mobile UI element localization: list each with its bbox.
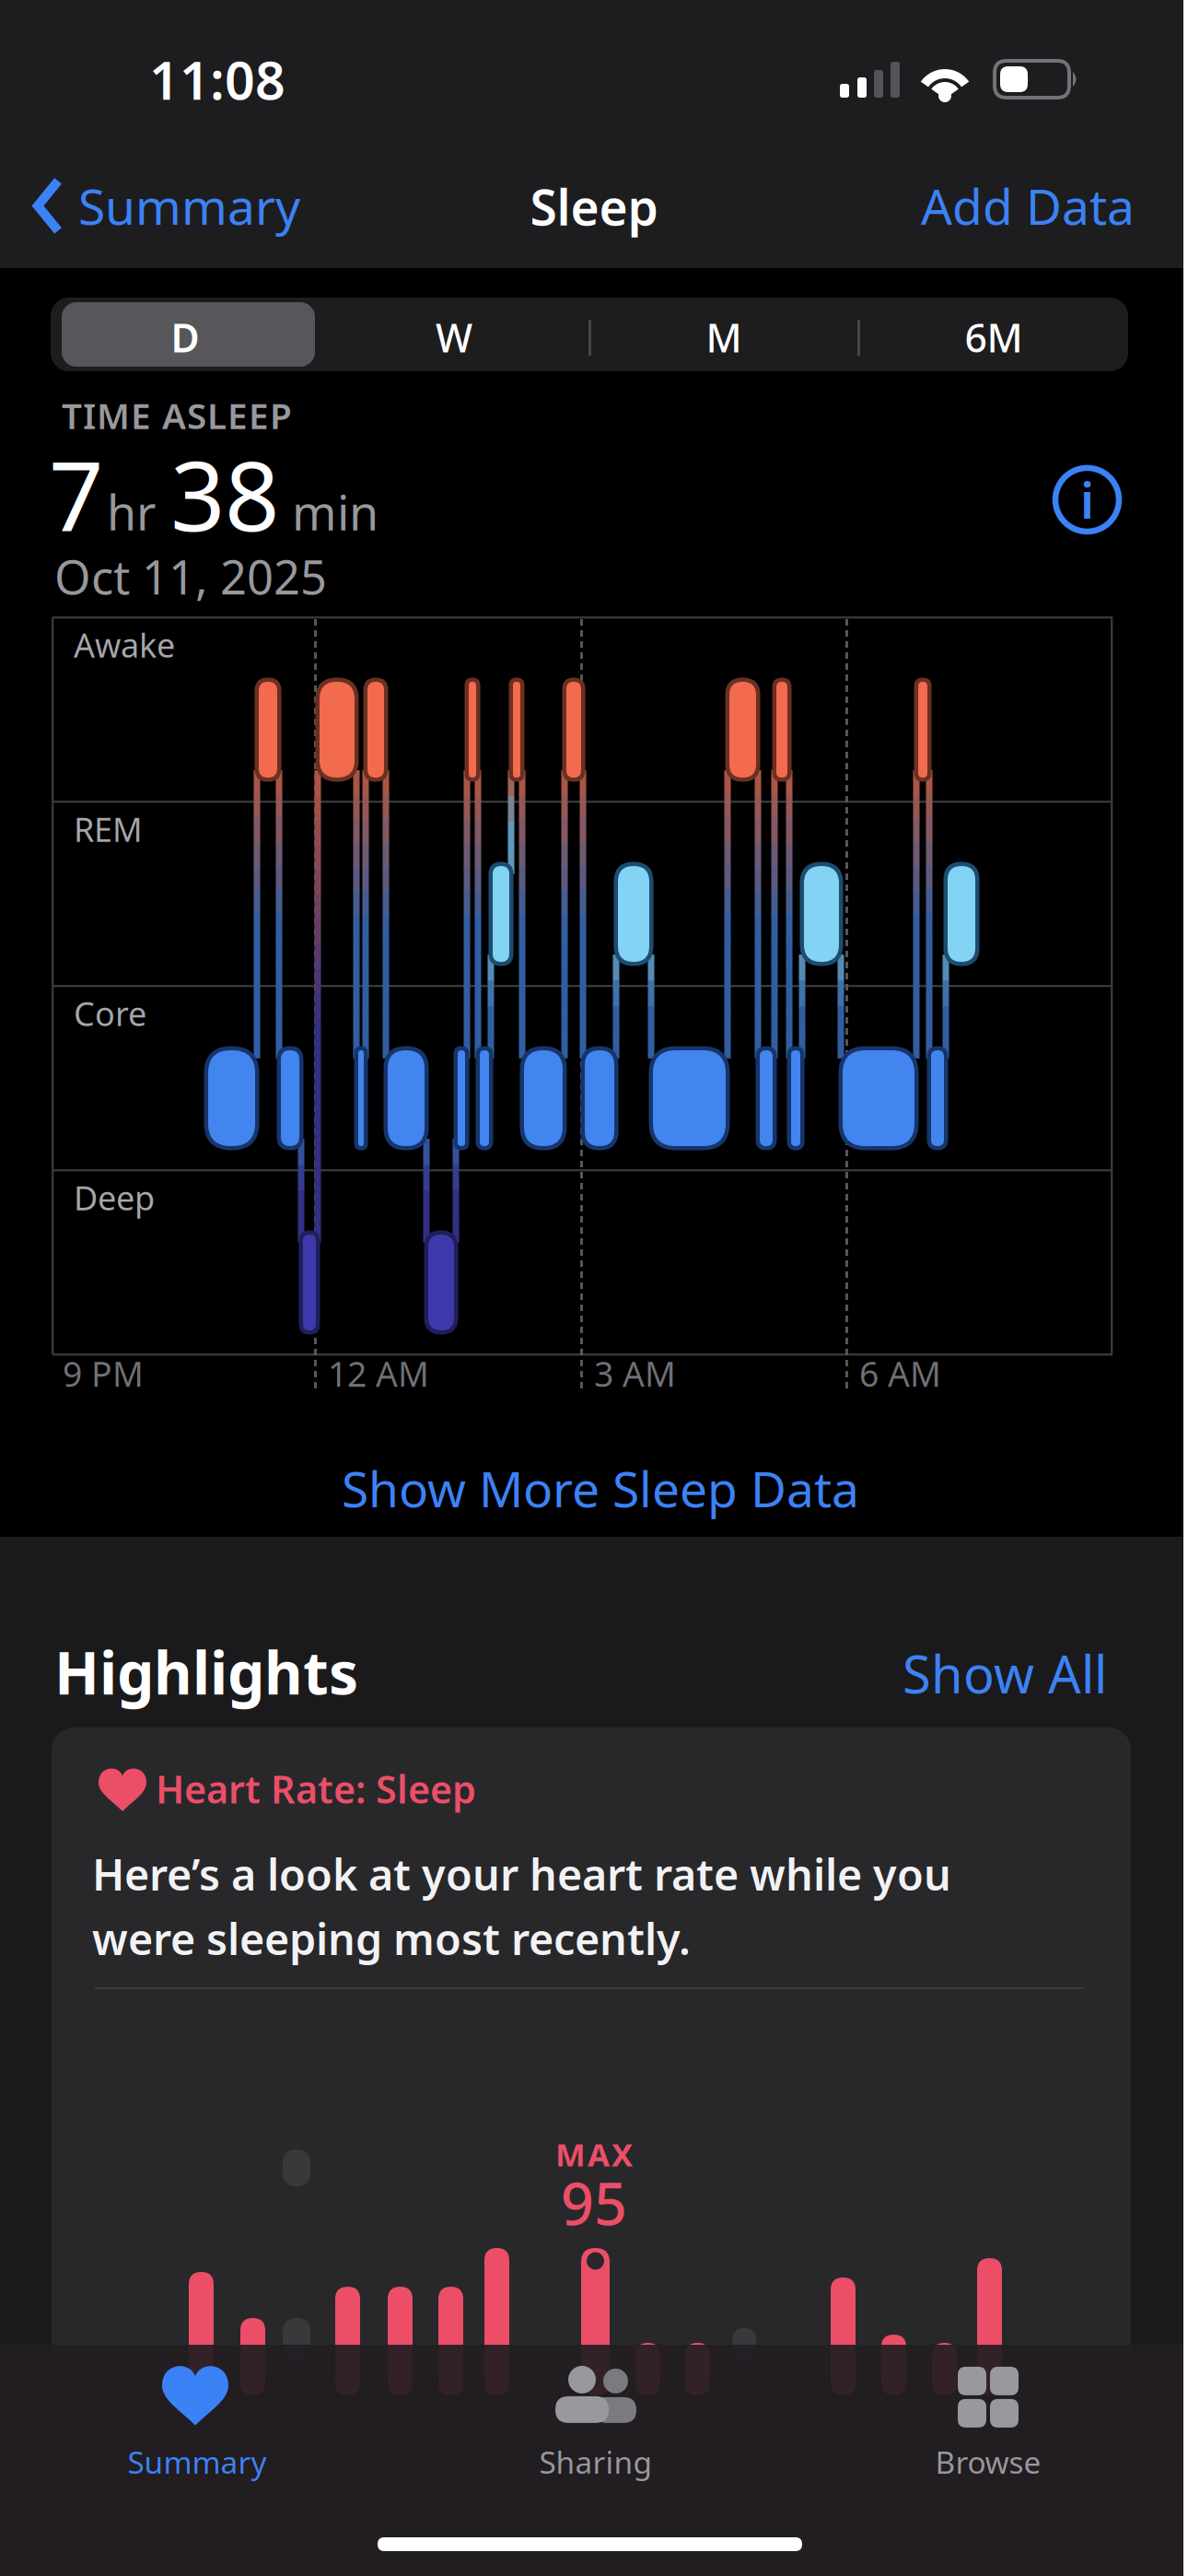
- button[interactable]: Summary: [32, 173, 300, 238]
- staticText: 11:08: [149, 44, 285, 114]
- staticText: i: [1080, 467, 1094, 532]
- staticText: M: [706, 311, 742, 363]
- staticText: hr: [107, 480, 156, 544]
- button[interactable]: Sharing: [539, 2366, 652, 2482]
- button[interactable]: D: [51, 300, 320, 374]
- staticText: TIME ASLEEP: [62, 392, 292, 439]
- staticText: Highlights: [54, 1633, 358, 1711]
- staticText: Heart Rate: Sleep: [156, 1763, 476, 1814]
- button[interactable]: Add Data: [921, 173, 1135, 238]
- staticText: W: [436, 311, 472, 363]
- staticText: D: [171, 311, 199, 363]
- staticText: Sleep: [530, 174, 658, 239]
- staticText: Show More Sleep Data: [342, 1456, 859, 1521]
- staticText: 6 AM: [859, 1351, 941, 1396]
- staticText: Add Data: [921, 173, 1135, 238]
- staticText: Summary: [128, 2441, 267, 2482]
- staticText: 95: [561, 2165, 627, 2241]
- staticText: 38: [170, 430, 279, 557]
- staticText: Show All: [903, 1639, 1107, 1708]
- staticText: REM: [74, 807, 143, 851]
- staticText: Sharing: [539, 2441, 652, 2482]
- button[interactable]: M: [589, 300, 858, 374]
- button[interactable]: W: [320, 300, 588, 374]
- staticText: 9 PM: [63, 1351, 144, 1396]
- staticText: MAX: [555, 2133, 633, 2175]
- staticText: Browse: [935, 2441, 1041, 2482]
- staticText: 12 AM: [328, 1351, 429, 1396]
- staticText: Deep: [74, 1176, 155, 1220]
- staticText: 7: [49, 430, 103, 557]
- button[interactable]: 6M: [859, 300, 1128, 374]
- staticText: 3 AM: [594, 1351, 676, 1396]
- staticText: Core: [74, 991, 146, 1035]
- staticText: Summary: [78, 173, 300, 238]
- button[interactable]: [52, 1727, 1131, 2375]
- staticText: 6M: [965, 311, 1023, 363]
- button[interactable]: Show More Sleep Data: [342, 1456, 859, 1521]
- button[interactable]: Browse: [935, 2366, 1041, 2482]
- button[interactable]: i: [1055, 467, 1119, 532]
- staticText: min: [292, 480, 379, 544]
- staticText: Oct 11, 2025: [54, 545, 327, 607]
- staticText: Awake: [74, 623, 175, 667]
- staticText: Here’s a look at your heart rate while y…: [92, 1845, 951, 1967]
- button[interactable]: Show All: [903, 1639, 1107, 1708]
- button[interactable]: Summary: [128, 2366, 267, 2482]
